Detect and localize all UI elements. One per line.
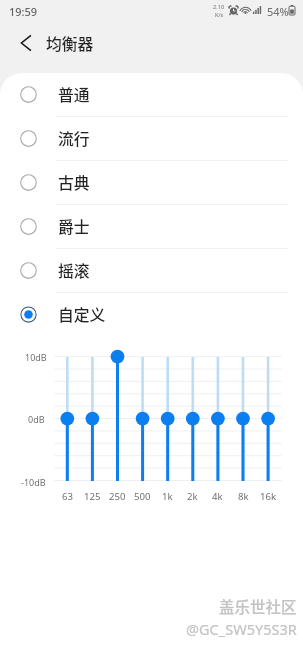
button[interactable]: 爵士 <box>0 205 303 249</box>
button[interactable]: Back <box>7 24 45 62</box>
staticText: @GC_SW5Y5S3R <box>186 619 297 639</box>
button[interactable]: 流行 <box>0 117 303 161</box>
staticText: 63 <box>62 490 73 503</box>
button[interactable]: 古典 <box>0 161 303 205</box>
staticText: 8k <box>238 490 249 503</box>
staticText: 摇滚 <box>58 259 90 282</box>
staticText: K/s <box>215 11 224 19</box>
staticText: 125 <box>84 490 101 503</box>
button[interactable]: 普通 <box>0 73 303 117</box>
staticText: 普通 <box>58 83 90 106</box>
staticText: 均衡器 <box>46 32 94 55</box>
staticText: 500 <box>134 490 151 503</box>
staticText: 16k <box>260 490 277 503</box>
button[interactable]: 自定义 <box>0 293 303 337</box>
staticText: 流行 <box>58 127 90 150</box>
button[interactable]: 摇滚 <box>0 249 303 293</box>
staticText: 0dB <box>28 413 45 425</box>
staticText: 2k <box>187 490 198 503</box>
staticText: 1k <box>162 490 173 503</box>
staticText: 250 <box>109 490 126 503</box>
staticText: 4k <box>212 490 223 503</box>
staticText: 自定义 <box>58 303 106 326</box>
staticText: 10dB <box>25 351 47 363</box>
staticText: 54% <box>267 4 289 19</box>
staticText: 古典 <box>58 171 90 194</box>
staticText: 盖乐世社区 <box>219 595 297 617</box>
staticText: 2.10 <box>213 3 225 11</box>
staticText: -10dB <box>21 476 46 488</box>
staticText: 爵士 <box>58 215 90 238</box>
staticText: 19:59 <box>9 4 38 19</box>
